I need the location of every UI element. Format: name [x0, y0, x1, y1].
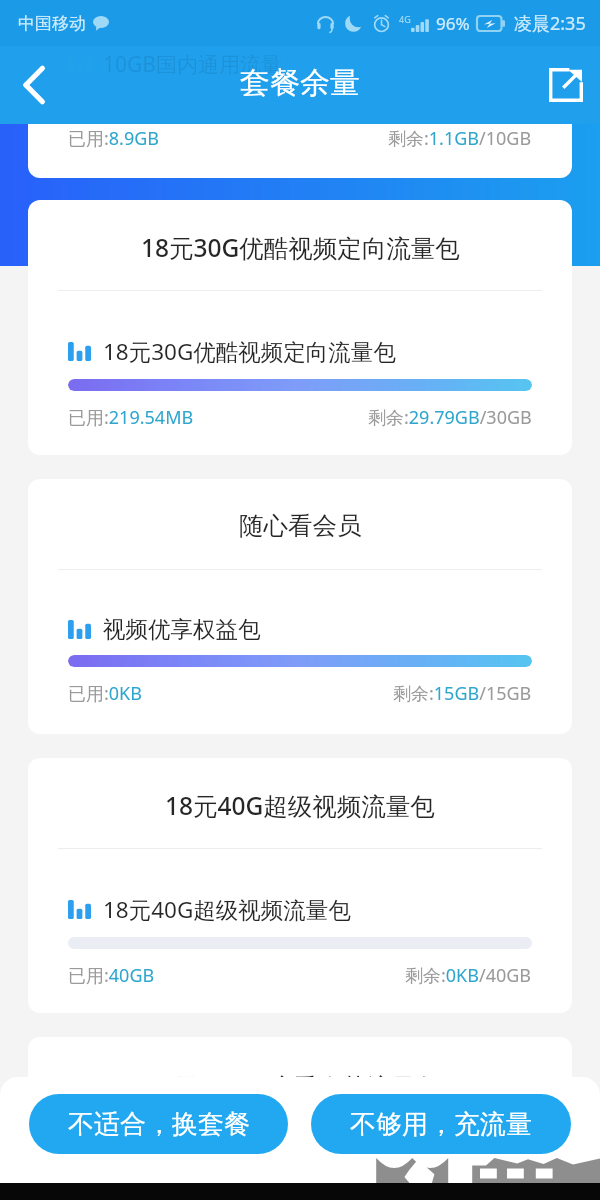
staticText: 剩余:29.79GB/30GB [368, 405, 532, 430]
staticText: 不适合，换套餐 [68, 1108, 250, 1141]
staticText: 18元40G超级视频流量包 [103, 894, 351, 925]
button[interactable]: 不适合，换套餐 [29, 1094, 288, 1154]
button[interactable]: Back [8, 59, 60, 111]
staticText: 剩余:15GB/15GB [393, 681, 532, 706]
button[interactable]: 18元40G超级视频流量包 [28, 758, 572, 1013]
staticText: 18元30G优酷视频定向流量包 [141, 231, 460, 264]
button[interactable]: 随心看会员 [28, 479, 572, 734]
staticText: 18元30G优酷视频定向流量包 [103, 336, 396, 367]
button[interactable]: 0元15G百度爱奇艺流量包 [28, 1037, 572, 1157]
staticText: 不够用，充流量 [350, 1108, 532, 1141]
staticText: 96% [436, 12, 470, 35]
button[interactable]: Share [540, 59, 592, 111]
staticText: 已用:0KB [68, 681, 142, 706]
staticText: 10GB国内通用流量 [103, 50, 282, 79]
button[interactable]: 不够用，充流量 [311, 1094, 571, 1154]
staticText: 已用:40GB [68, 963, 155, 988]
staticText: 套餐余量 [240, 64, 360, 102]
staticText: 剩余:1.1GB/10GB [388, 126, 532, 151]
staticText: 0元15G百度爱奇艺流量包 [160, 1070, 441, 1103]
staticText: 中国移动 [18, 13, 86, 34]
staticText: 已用:8.9GB [68, 126, 160, 151]
staticText: 18元40G超级视频流量包 [165, 789, 435, 822]
staticText: 凌晨2:35 [514, 11, 586, 36]
staticText: 剩余:0KB/40GB [405, 963, 532, 988]
staticText: 随心看会员 [239, 510, 362, 541]
staticText: 视频优享权益包 [103, 615, 261, 643]
staticText: 4G [399, 13, 411, 25]
button[interactable]: 18元30G优酷视频定向流量包 [28, 200, 572, 455]
staticText: 已用:219.54MB [68, 405, 194, 430]
